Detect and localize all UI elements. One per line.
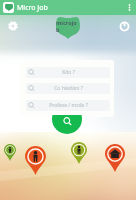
button[interactable]: Profese / mzda ? (26, 100, 110, 111)
button[interactable]: App icon (3, 2, 14, 13)
button[interactable]: More options (123, 1, 136, 14)
staticText: Co hledám ? (54, 85, 83, 92)
button[interactable]: Power (117, 19, 131, 33)
button[interactable]: Map marker (71, 142, 87, 164)
button[interactable]: Map marker (105, 144, 125, 172)
button[interactable]: Map marker (4, 144, 16, 161)
staticText: Profese / mzda ? (49, 102, 88, 109)
button[interactable]: Map marker (25, 146, 46, 175)
button[interactable]: Co hledám ? (26, 83, 110, 94)
staticText: Micro Job (17, 3, 48, 13)
staticText: Kdo ? (62, 69, 75, 76)
button[interactable]: Settings (6, 19, 20, 33)
button[interactable]: Search (52, 104, 82, 134)
button[interactable]: Kdo ? (26, 67, 110, 78)
staticText: microjob (56, 19, 80, 33)
